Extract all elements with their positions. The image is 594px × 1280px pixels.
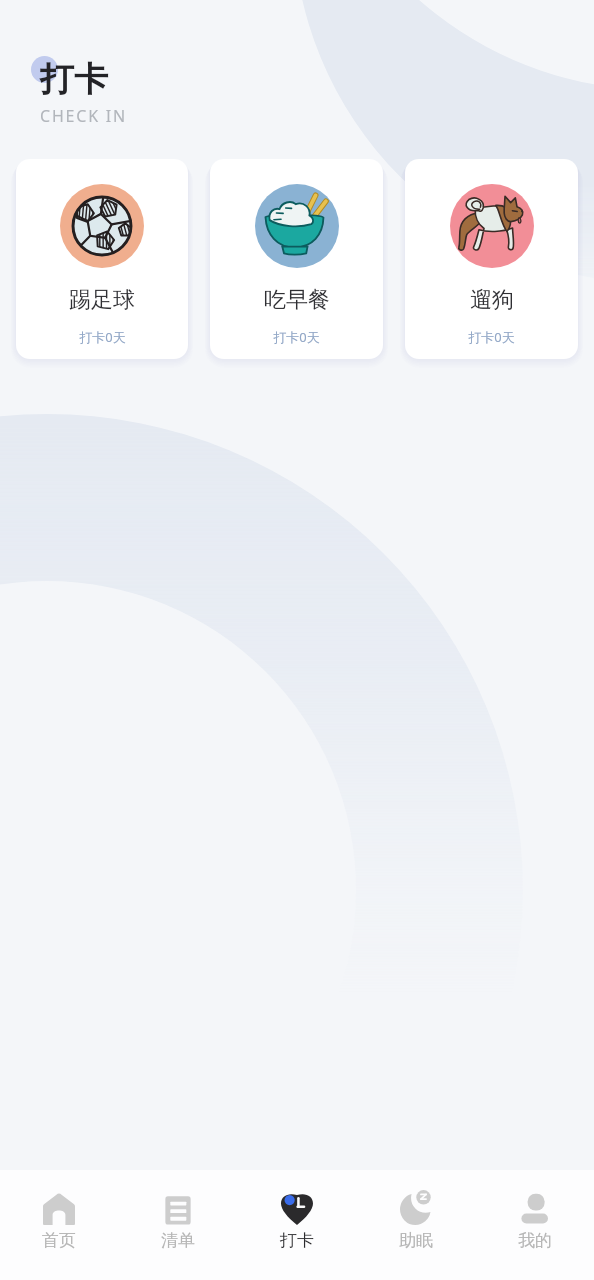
staticText: CHECK IN xyxy=(40,105,128,127)
staticText: 打卡0天 xyxy=(273,328,320,346)
button[interactable]: 吃早餐 xyxy=(210,159,383,359)
staticText: 踢足球 xyxy=(69,286,135,314)
staticText: 打卡0天 xyxy=(468,328,515,346)
button[interactable]: 踢足球 xyxy=(16,159,188,359)
button[interactable]: 清单 xyxy=(118,1170,237,1251)
staticText: 打卡0天 xyxy=(79,328,126,346)
staticText: 清单 xyxy=(161,1230,195,1251)
button[interactable]: 打卡 xyxy=(237,1170,356,1251)
staticText: 遛狗 xyxy=(470,286,514,314)
button[interactable]: 遛狗 xyxy=(405,159,578,359)
staticText: 首页 xyxy=(42,1230,76,1251)
button[interactable]: 我的 xyxy=(475,1170,594,1251)
button[interactable]: 助眠 xyxy=(356,1170,475,1251)
button[interactable]: 首页 xyxy=(0,1170,118,1251)
staticText: 助眠 xyxy=(399,1230,433,1251)
staticText: 吃早餐 xyxy=(264,286,330,314)
staticText: 打卡 xyxy=(40,58,108,101)
staticText: 打卡 xyxy=(280,1230,314,1251)
staticText: 我的 xyxy=(518,1230,552,1251)
